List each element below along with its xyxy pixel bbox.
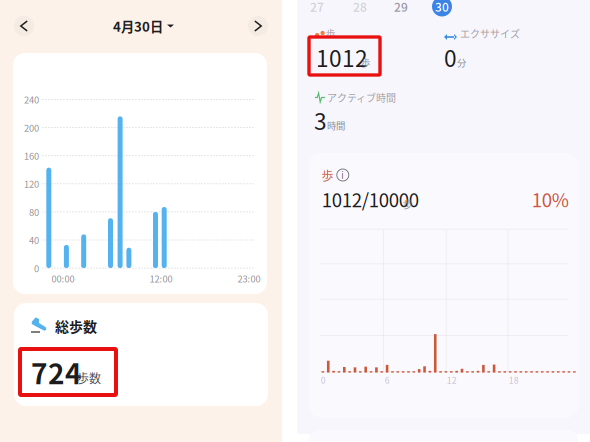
staticText: 0 xyxy=(444,41,457,73)
staticText: 12 xyxy=(447,374,457,386)
staticText: 27 xyxy=(310,0,324,15)
staticText: 0 xyxy=(321,374,326,386)
staticText: 歩 xyxy=(321,167,333,184)
staticText: 12:00 xyxy=(149,272,172,285)
staticText: 分 xyxy=(457,56,466,69)
staticText: 80 xyxy=(29,205,39,219)
staticText: 4月30日 xyxy=(113,16,163,36)
staticText: 160 xyxy=(24,149,39,162)
staticText: 724 xyxy=(31,352,82,392)
staticText: 時間 xyxy=(327,119,345,132)
button[interactable]: 28 xyxy=(353,0,367,15)
button[interactable]: Previous day xyxy=(14,16,34,36)
staticText: 1012/10000 xyxy=(322,185,419,212)
button[interactable]: 4月30日 xyxy=(113,16,174,36)
button[interactable]: Next day xyxy=(248,16,268,36)
staticText: 歩 xyxy=(326,26,335,40)
staticText: 120 xyxy=(24,177,39,190)
staticText: 0 xyxy=(34,261,39,275)
staticText: エクササイズ xyxy=(460,26,520,41)
staticText: 18 xyxy=(509,374,519,386)
staticText: 1012 xyxy=(316,41,368,73)
button[interactable]: 30 xyxy=(432,0,452,16)
staticText: 歩数 xyxy=(77,369,101,387)
staticText: 23:00 xyxy=(237,272,260,285)
staticText: 歩 xyxy=(403,197,413,211)
staticText: 総歩数 xyxy=(55,316,97,336)
staticText: 200 xyxy=(24,121,39,134)
staticText: 10% xyxy=(532,185,569,212)
staticText: 00:00 xyxy=(51,272,74,285)
staticText: 28 xyxy=(353,0,367,15)
staticText: 240 xyxy=(24,93,39,106)
button[interactable]: 29 xyxy=(394,0,408,15)
staticText: 3 xyxy=(314,104,327,136)
staticText: 40 xyxy=(29,233,39,247)
staticText: アクティブ時間 xyxy=(327,90,396,105)
staticText: 29 xyxy=(394,0,408,15)
staticText: 6 xyxy=(385,374,390,386)
staticText: 歩 xyxy=(361,56,370,69)
button[interactable]: 27 xyxy=(310,0,324,15)
staticText: i xyxy=(341,168,344,182)
staticText: 30 xyxy=(435,0,449,15)
